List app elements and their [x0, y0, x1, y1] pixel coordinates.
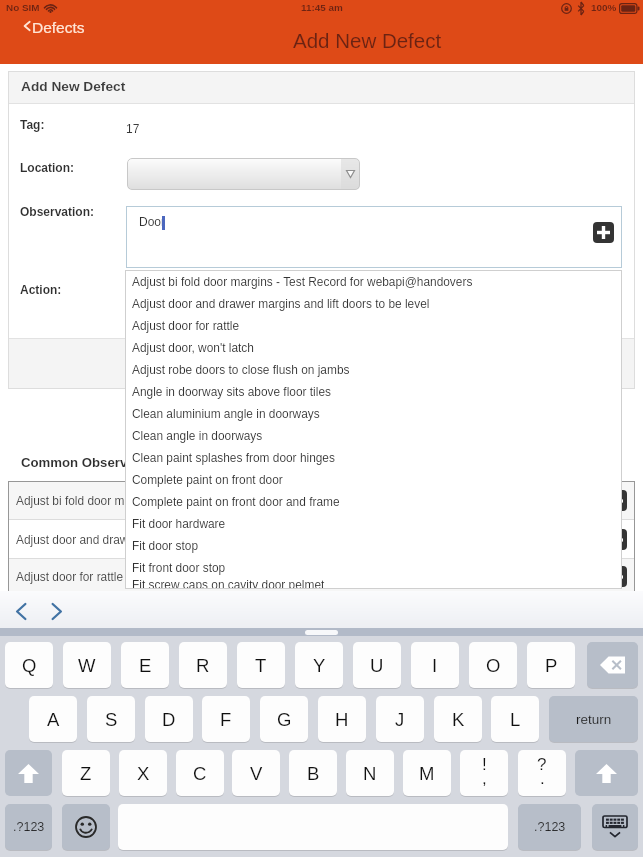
staticText: Add New Defect	[293, 29, 442, 52]
button[interactable]: R	[179, 642, 227, 688]
button[interactable]: Shift	[5, 750, 52, 796]
button[interactable]: Adjust bi fold door margins - Test Recor…	[125, 270, 622, 292]
button[interactable]: S	[87, 696, 135, 742]
staticText: L	[510, 709, 521, 730]
button[interactable]: I	[411, 642, 459, 688]
staticText: W	[78, 655, 96, 676]
staticText: A	[47, 709, 60, 730]
button[interactable]: Fit door stop	[125, 534, 622, 556]
button[interactable]: D	[145, 696, 193, 742]
button[interactable]: E	[121, 642, 169, 688]
button[interactable]: U	[353, 642, 401, 688]
button[interactable]: Backspace	[587, 642, 638, 688]
staticText: F	[220, 709, 232, 730]
button[interactable]: Adjust bi fold door margins - Test Recor…	[8, 481, 635, 519]
staticText: Add New Defect	[21, 79, 126, 94]
button[interactable]: Previous field	[8, 600, 35, 622]
button[interactable]: ?	[518, 750, 566, 796]
button[interactable]: T	[237, 642, 285, 688]
button[interactable]: Fit door hardware	[125, 512, 622, 534]
button[interactable]: Clean angle in doorways	[125, 424, 622, 446]
staticText: Fit front door stop	[132, 561, 226, 574]
button[interactable]: F	[202, 696, 250, 742]
button[interactable]: L	[491, 696, 539, 742]
button[interactable]: A	[29, 696, 77, 742]
button[interactable]: B	[289, 750, 337, 796]
button[interactable]: Clean aluminium angle in doorways	[125, 402, 622, 424]
button[interactable]: return	[549, 696, 638, 742]
button[interactable]: H	[318, 696, 366, 742]
button[interactable]: Emoji	[62, 804, 110, 850]
button[interactable]: Hide keyboard	[592, 804, 638, 850]
button[interactable]: W	[63, 642, 111, 688]
button[interactable]: Adjust door for rattle	[125, 314, 622, 336]
button[interactable]: X	[119, 750, 167, 796]
staticText: K	[452, 709, 465, 730]
button[interactable]: Next field	[43, 600, 70, 622]
staticText: .?123	[13, 820, 45, 834]
staticText: Adjust bi fold door margins - Test Recor…	[132, 275, 473, 288]
staticText: return	[576, 712, 612, 727]
button[interactable]: Add observation	[593, 222, 614, 243]
staticText: Common Observations	[21, 455, 167, 470]
button[interactable]: P	[527, 642, 575, 688]
staticText: Adjust robe doors to close flush on jamb…	[132, 363, 350, 376]
button[interactable]: Adjust door for rattle	[8, 559, 635, 594]
staticText: Clean angle in doorways	[132, 429, 263, 442]
staticText: X	[137, 763, 150, 784]
staticText: Y	[313, 655, 326, 676]
button[interactable]: Defects	[20, 16, 90, 38]
staticText: Adjust door, won't latch	[132, 341, 254, 354]
staticText: Adjust bi fold door margins - Test Recor…	[16, 494, 622, 507]
button[interactable]: Adjust door, won't latch	[125, 336, 622, 358]
button[interactable]: .?123	[518, 804, 581, 850]
staticText: Clean aluminium angle in doorways	[132, 407, 320, 420]
button[interactable]: G	[260, 696, 308, 742]
button[interactable]: J	[376, 696, 424, 742]
staticText: Action:	[20, 283, 62, 296]
button[interactable]: M	[403, 750, 451, 796]
button[interactable]: Fit front door stop	[125, 556, 622, 578]
button[interactable]	[127, 158, 360, 190]
button[interactable]: V	[232, 750, 280, 796]
button[interactable]: K	[434, 696, 482, 742]
staticText: Clean paint splashes from door hinges	[132, 451, 335, 464]
staticText: 11:45 am	[301, 2, 343, 13]
button[interactable]: O	[469, 642, 517, 688]
button[interactable]: Y	[295, 642, 343, 688]
button[interactable]: Adjust door and drawer margins and lift …	[125, 292, 622, 314]
button[interactable]: Complete paint on front door and frame	[125, 490, 622, 512]
staticText: J	[395, 709, 405, 730]
staticText: M	[419, 763, 435, 784]
staticText: 17	[126, 122, 140, 135]
staticText: V	[250, 763, 263, 784]
staticText: C	[193, 763, 207, 784]
staticText: G	[277, 709, 292, 730]
button[interactable]: Adjust robe doors to close flush on jamb…	[125, 358, 622, 380]
button[interactable]: Shift	[575, 750, 638, 796]
button[interactable]: Q	[5, 642, 53, 688]
button[interactable]: Angle in doorway sits above floor tiles	[125, 380, 622, 402]
staticText: S	[105, 709, 118, 730]
staticText: Fit screw caps on cavity door pelmet	[132, 578, 325, 589]
button[interactable]: N	[346, 750, 394, 796]
staticText: Fit door hardware	[132, 517, 226, 530]
staticText: .	[540, 769, 545, 788]
button[interactable]: Fit screw caps on cavity door pelmet	[125, 578, 622, 589]
button[interactable]: C	[176, 750, 224, 796]
staticText: Tag:	[20, 118, 45, 131]
button[interactable]: Z	[62, 750, 110, 796]
staticText: ?	[537, 755, 547, 774]
staticText: Complete paint on front door and frame	[132, 495, 340, 508]
staticText: Fit door stop	[132, 539, 199, 552]
button[interactable]: !	[460, 750, 508, 796]
button[interactable]: Adjust door and drawer margins and lift …	[8, 520, 635, 558]
staticText: B	[307, 763, 320, 784]
staticText: Q	[22, 655, 37, 676]
button[interactable]: .?123	[5, 804, 52, 850]
button[interactable]: Complete paint on front door	[125, 468, 622, 490]
button[interactable]: Clean paint splashes from door hinges	[125, 446, 622, 468]
staticText: 100%	[591, 2, 617, 13]
staticText: E	[139, 655, 152, 676]
